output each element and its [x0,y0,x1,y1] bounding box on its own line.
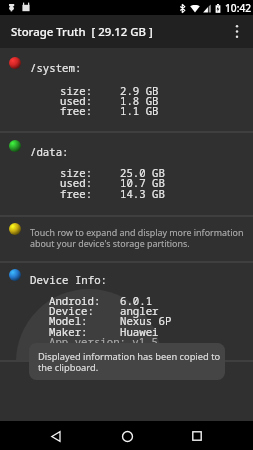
staticText: /system: [30,61,82,76]
staticText: 6.0.1 [120,294,153,309]
staticText: free: [60,104,93,119]
staticText: Device: [49,304,94,319]
staticText: /data: [30,145,69,160]
staticText: size: [60,166,93,181]
staticText: 1.1 GB [120,104,159,119]
staticText: 10:42 [225,1,252,15]
staticText: free: [60,187,93,202]
staticText: Displayed information has been copied to… [38,350,224,373]
staticText: 10.7 GB [120,176,165,191]
staticText: Huawei [120,325,159,340]
staticText: used: [60,176,93,191]
staticText: Android: [49,294,101,309]
button[interactable]: Home [113,422,141,450]
staticText: Nexus 6P [120,314,172,329]
staticText: used: [60,94,93,109]
staticText: 1.8 GB [120,94,159,109]
staticText: Storage Truth [ 29.12 GB ] [11,24,153,40]
staticText: 2.9 GB [120,84,159,99]
staticText: Maker: [49,325,88,340]
button[interactable]: /system: [0,48,253,131]
staticText: Touch row to expand and display more inf… [30,226,244,249]
button[interactable]: Recent apps [183,422,211,450]
staticText: angler [120,304,159,319]
button[interactable]: Back [42,422,70,450]
staticText: Device Info: [30,273,107,288]
staticText: 25.0 GB [120,166,165,181]
button[interactable]: Touch row to expand and display more inf… [0,217,253,260]
staticText: App version: v1.5 [49,335,159,350]
button[interactable]: More options [220,15,253,48]
button[interactable]: /data: [0,133,253,215]
staticText: 14.3 GB [120,187,165,202]
button[interactable]: Device Info: [0,262,253,360]
staticText: size: [60,84,93,99]
staticText: Model: [49,314,88,329]
